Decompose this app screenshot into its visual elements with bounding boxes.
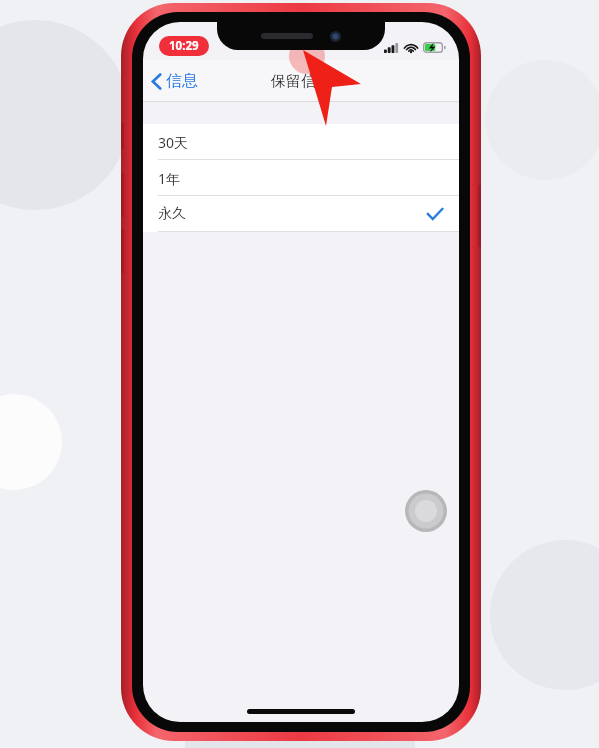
button[interactable]: 信息 [143, 66, 208, 96]
button[interactable]: 1年 [143, 160, 459, 196]
staticText: 1年 [158, 169, 181, 188]
button[interactable]: 30天 [143, 124, 459, 160]
button[interactable]: AssistiveTouch [405, 490, 447, 532]
staticText: 10:29 [169, 38, 199, 54]
staticText: 保留信息 [271, 72, 331, 91]
staticText: 30天 [158, 133, 189, 152]
staticText: 信息 [166, 71, 198, 91]
button[interactable]: 永久 [143, 196, 459, 232]
staticText: 永久 [158, 205, 186, 223]
